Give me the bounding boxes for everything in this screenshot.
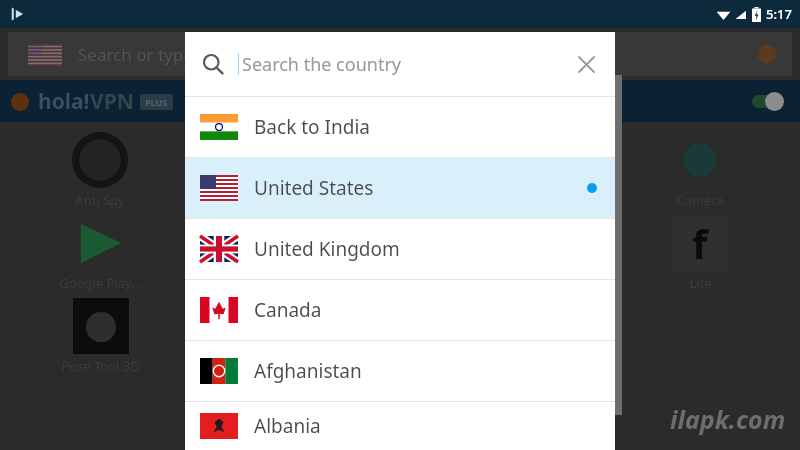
- staticText: United Kingdom: [254, 236, 400, 262]
- button[interactable]: f: [672, 215, 728, 292]
- staticText: Pose Tool 3D: [61, 357, 140, 375]
- staticText: Google Play...: [59, 274, 142, 292]
- staticText: Afghanistan: [254, 358, 362, 384]
- staticText: 5:17: [766, 5, 792, 23]
- button[interactable]: Canada: [185, 280, 615, 340]
- button[interactable]: Albania: [185, 402, 615, 450]
- staticText: Anti Spy: [75, 191, 125, 209]
- staticText: Albania: [254, 413, 321, 439]
- staticText: VPN: [90, 87, 134, 116]
- button[interactable]: Camera: [672, 132, 728, 209]
- staticText: hola!: [38, 87, 90, 116]
- button[interactable]: United Kingdom: [185, 219, 615, 279]
- button[interactable]: Anti Spy: [72, 132, 128, 209]
- staticText: Search the country: [242, 52, 401, 77]
- staticText: PLUS: [145, 96, 168, 108]
- button[interactable]: Google Play...: [59, 215, 142, 292]
- button[interactable]: Afghanistan: [185, 341, 615, 401]
- staticText: United States: [254, 175, 374, 201]
- staticText: f: [692, 216, 708, 270]
- other: Search: [202, 53, 224, 75]
- staticText: Lite: [689, 274, 712, 292]
- button[interactable]: Search: [185, 32, 615, 96]
- button[interactable]: Search or type URL: [8, 32, 792, 76]
- button[interactable]: Pose Tool 3D: [61, 298, 140, 375]
- staticText: Back to India: [254, 114, 370, 140]
- button[interactable]: Back to India: [185, 97, 615, 157]
- staticText: Canada: [254, 297, 322, 323]
- button[interactable]: United States: [185, 158, 615, 218]
- button[interactable]: Clear search: [573, 51, 599, 77]
- staticText: Camera: [676, 191, 724, 209]
- staticText: ilapk.com: [670, 402, 786, 436]
- staticText: Search or type URL: [78, 43, 230, 66]
